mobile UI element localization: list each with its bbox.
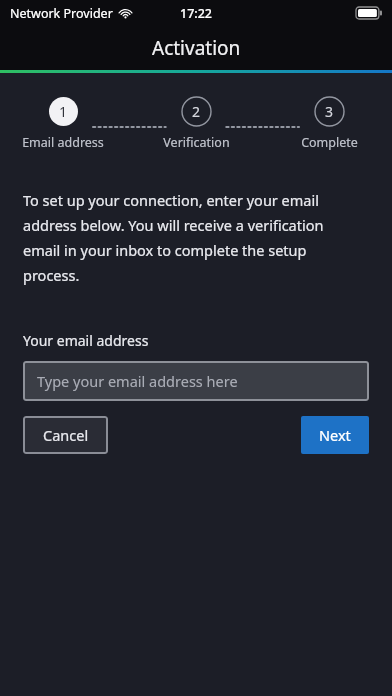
button[interactable]: Next [301,416,369,454]
staticText: Verification [163,134,230,151]
staticText: Network Provider [10,5,113,22]
button[interactable]: Cancel [23,416,108,454]
button[interactable]: 3 [267,96,392,151]
staticText: Email address [22,134,104,151]
staticText: Type your email address here [37,371,238,391]
button[interactable]: 1 [0,96,126,151]
staticText: Activation [152,35,241,61]
staticText: Next [319,425,351,445]
button[interactable]: 2 [126,96,267,151]
staticText: Your email address [23,331,149,350]
staticText: Cancel [43,425,89,445]
staticText: 1 [59,102,68,121]
staticText: 3 [325,102,334,121]
button[interactable]: Type your email address here [23,361,369,401]
staticText: 2 [192,102,201,121]
staticText: To set up your connection, enter your em… [23,190,362,285]
staticText: 17:22 [180,5,213,22]
staticText: Complete [301,134,358,151]
